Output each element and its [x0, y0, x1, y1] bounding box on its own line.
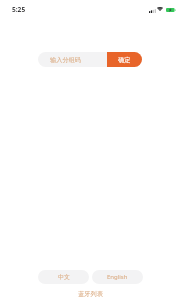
button[interactable]: 蓝牙列表: [78, 290, 103, 298]
other: Cellular signal: [149, 9, 156, 13]
other: Wi-Fi: [157, 7, 163, 11]
button[interactable]: 中文: [38, 270, 89, 284]
staticText: 确定: [118, 56, 131, 64]
staticText: English: [107, 273, 128, 281]
staticText: 输入分组码: [50, 56, 81, 64]
staticText: 5:25: [12, 5, 26, 14]
button[interactable]: 确定: [107, 52, 142, 67]
button[interactable]: 输入分组码: [38, 52, 107, 67]
staticText: 中文: [58, 273, 70, 281]
button[interactable]: English: [92, 270, 143, 284]
other: Battery charging: [166, 8, 176, 12]
